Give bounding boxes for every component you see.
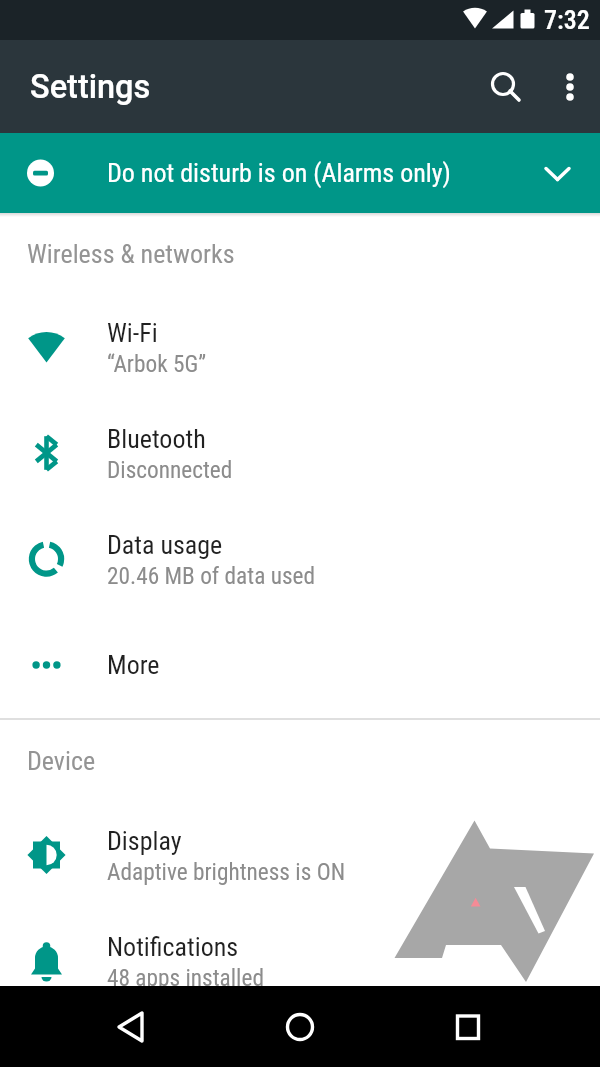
staticText: More <box>107 650 160 680</box>
button[interactable] <box>276 1003 324 1051</box>
staticText: Bluetooth <box>107 424 206 454</box>
button[interactable]: Data usage <box>0 506 600 612</box>
staticText: Wireless & networks <box>27 239 235 269</box>
button[interactable]: Notifications <box>0 908 600 1014</box>
staticText: Do not disturb is on (Alarms only) <box>107 158 451 188</box>
button[interactable] <box>106 1003 154 1051</box>
button[interactable]: Display <box>0 802 600 908</box>
staticText: 20.46 MB of data used <box>107 562 316 589</box>
button[interactable] <box>546 63 594 111</box>
button[interactable] <box>444 1003 492 1051</box>
button[interactable] <box>479 63 527 111</box>
staticText: Device <box>27 746 96 776</box>
button[interactable]: More <box>0 612 600 718</box>
staticText: 48 apps installed <box>107 964 264 991</box>
staticText: Display <box>107 826 182 856</box>
staticText: Notifications <box>107 932 239 962</box>
staticText: Disconnected <box>107 456 233 483</box>
staticText: Data usage <box>107 530 223 560</box>
button[interactable]: Wi-Fi <box>0 294 600 400</box>
staticText: Wi-Fi <box>107 318 158 348</box>
staticText: Adaptive brightness is ON <box>107 858 346 885</box>
staticText: Settings <box>30 68 151 106</box>
button[interactable]: Bluetooth <box>0 400 600 506</box>
button[interactable]: Do not disturb is on (Alarms only) <box>0 133 600 213</box>
staticText: “Arbok 5G” <box>107 350 207 377</box>
staticText: 7:32 <box>544 5 590 35</box>
